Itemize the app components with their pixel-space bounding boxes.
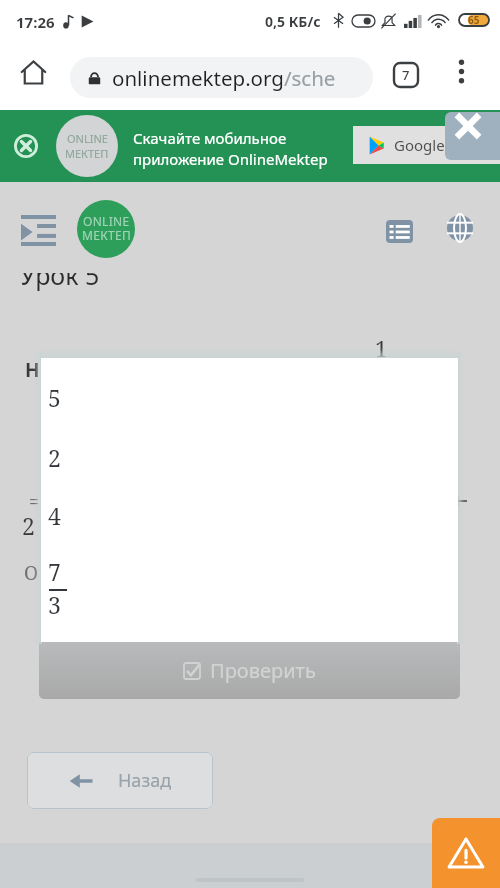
button[interactable]: Назад	[27, 752, 213, 809]
staticText: Скачайте мобильное	[133, 128, 287, 148]
staticText: onlinemektep.org/sche	[112, 64, 336, 92]
staticText: ONLINE	[67, 131, 108, 146]
button[interactable]: Lesson list	[379, 211, 419, 251]
staticText: 1	[375, 333, 388, 363]
staticText: 7	[48, 556, 61, 587]
staticText: 65	[468, 13, 480, 27]
staticText: 5	[48, 382, 61, 413]
button[interactable]: Dismiss	[445, 112, 500, 160]
button[interactable]: onlinemektep.org/sche	[70, 57, 373, 98]
button[interactable]: Menu	[12, 207, 64, 253]
button[interactable]: Language	[440, 208, 480, 248]
button[interactable]: Проверить	[39, 642, 460, 699]
staticText: Н	[25, 357, 40, 383]
button[interactable]: More options	[445, 55, 478, 88]
staticText: ONLINE	[83, 213, 130, 229]
staticText: О	[24, 560, 39, 586]
button[interactable]: Close banner	[10, 130, 42, 162]
staticText: 4	[48, 500, 61, 531]
staticText: 2	[48, 442, 61, 473]
button[interactable]: Report a problem	[432, 818, 500, 888]
staticText: Урок 5	[20, 258, 100, 292]
button[interactable]: Home	[13, 52, 53, 92]
staticText: 7	[402, 66, 410, 84]
staticText: приложение OnlineMektep	[133, 149, 328, 169]
staticText: Google P	[394, 135, 458, 155]
staticText: =	[29, 489, 40, 514]
staticText: МЕКТЕП	[65, 146, 109, 161]
button[interactable]: Google P	[353, 126, 500, 164]
staticText: Назад	[118, 768, 172, 793]
staticText: Проверить	[210, 657, 316, 684]
staticText: 0,5 КБ/c	[265, 12, 321, 31]
staticText: 2	[22, 510, 35, 541]
button[interactable]: Online Mektep home	[77, 200, 135, 258]
staticText: 17:26	[16, 12, 55, 32]
staticText: МЕКТЕП	[82, 227, 131, 243]
button[interactable]: Tabs	[391, 60, 421, 90]
staticText: 3	[48, 589, 61, 620]
